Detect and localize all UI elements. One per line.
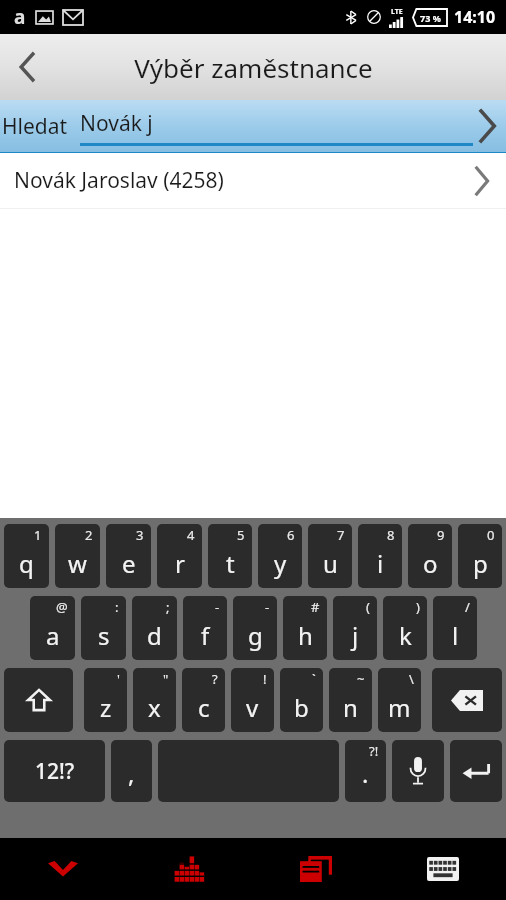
button[interactable]: Backspace xyxy=(432,668,502,732)
staticText: 9 xyxy=(437,526,445,544)
staticText: a xyxy=(46,619,60,652)
staticText: " xyxy=(163,670,169,688)
staticText: p xyxy=(473,547,488,580)
button[interactable]: Enter xyxy=(450,740,502,802)
staticText: ; xyxy=(166,598,170,616)
staticText: i xyxy=(377,547,384,580)
button[interactable]: 9 xyxy=(408,524,452,588)
staticText: m xyxy=(388,691,411,724)
staticText: 3 xyxy=(136,526,144,544)
staticText: a xyxy=(14,4,26,30)
button[interactable]: Hledat xyxy=(0,100,506,152)
button[interactable]: - xyxy=(183,596,227,660)
button[interactable]: \ xyxy=(378,668,421,732)
button[interactable]: 0 xyxy=(458,524,502,588)
button[interactable]: 2 xyxy=(55,524,100,588)
staticText: 8 xyxy=(387,526,395,544)
button[interactable]: # xyxy=(283,596,327,660)
staticText: r xyxy=(175,547,185,580)
staticText: 2 xyxy=(85,526,93,544)
button[interactable]: 3 xyxy=(106,524,151,588)
button[interactable]: Symbols xyxy=(4,740,105,802)
button[interactable]: " xyxy=(133,668,176,732)
staticText: - xyxy=(265,598,270,616)
staticText: 12!? xyxy=(35,757,75,786)
button[interactable]: Back xyxy=(0,838,126,900)
staticText: @ xyxy=(56,598,68,616)
button[interactable]: 1 xyxy=(4,524,49,588)
button[interactable]: : xyxy=(81,596,126,660)
button[interactable]: 8 xyxy=(358,524,402,588)
staticText: j xyxy=(352,619,359,652)
staticText: 0 xyxy=(487,526,495,544)
staticText: v xyxy=(246,691,259,724)
button[interactable]: ! xyxy=(231,668,274,732)
button[interactable]: 5 xyxy=(208,524,252,588)
staticText: q xyxy=(19,547,34,580)
staticText: 4 xyxy=(187,526,195,544)
button[interactable]: Voice input xyxy=(392,740,444,802)
staticText: LTE xyxy=(391,7,403,17)
staticText: l xyxy=(452,619,459,652)
staticText: z xyxy=(100,691,112,724)
staticText: t xyxy=(226,547,235,580)
staticText: ! xyxy=(263,670,267,688)
staticText: e xyxy=(122,547,136,580)
button[interactable]: 6 xyxy=(258,524,302,588)
button[interactable]: , xyxy=(111,740,152,802)
staticText: k xyxy=(399,619,412,652)
staticText: 14:10 xyxy=(454,6,496,28)
staticText: Hledat xyxy=(2,112,68,141)
staticText: g xyxy=(248,619,263,652)
staticText: : xyxy=(115,598,119,616)
staticText: ( xyxy=(366,598,370,616)
staticText: 1 xyxy=(34,526,42,544)
staticText: ' xyxy=(117,670,120,688)
button[interactable]: ~ xyxy=(329,668,372,732)
button[interactable]: Novák Jaroslav (4258) xyxy=(0,153,506,208)
staticText: d xyxy=(147,619,162,652)
staticText: b xyxy=(294,691,309,724)
button[interactable]: / xyxy=(433,596,477,660)
staticText: f xyxy=(201,619,210,652)
staticText: Výběr zaměstnance xyxy=(134,50,373,85)
staticText: # xyxy=(311,598,320,616)
staticText: w xyxy=(68,547,87,580)
staticText: \ xyxy=(409,670,414,688)
button[interactable]: ?! xyxy=(345,740,386,802)
staticText: c xyxy=(198,691,210,724)
staticText: o xyxy=(423,547,438,580)
staticText: s xyxy=(98,619,110,652)
button[interactable]: ( xyxy=(333,596,377,660)
button[interactable]: Shift xyxy=(4,668,73,732)
button[interactable]: @ xyxy=(30,596,75,660)
button[interactable]: Home xyxy=(126,838,252,900)
button[interactable]: ; xyxy=(132,596,177,660)
staticText: 73 % xyxy=(420,12,441,24)
button[interactable]: - xyxy=(233,596,277,660)
staticText: 5 xyxy=(237,526,245,544)
button[interactable]: ? xyxy=(182,668,225,732)
staticText: ~ xyxy=(357,670,365,688)
staticText: ?! xyxy=(369,742,379,760)
staticText: 7 xyxy=(337,526,345,544)
staticText: , xyxy=(128,757,135,790)
button[interactable]: 4 xyxy=(157,524,202,588)
button[interactable]: 7 xyxy=(308,524,352,588)
staticText: ` xyxy=(312,670,316,688)
button[interactable]: Back xyxy=(0,40,54,94)
button[interactable]: ) xyxy=(383,596,427,660)
button[interactable]: ` xyxy=(280,668,323,732)
staticText: u xyxy=(323,547,338,580)
staticText: x xyxy=(148,691,161,724)
staticText: . xyxy=(362,757,369,790)
button[interactable]: Switch keyboard xyxy=(379,838,506,900)
staticText: h xyxy=(298,619,313,652)
button[interactable]: Recent apps xyxy=(252,838,379,900)
staticText: ? xyxy=(212,670,218,688)
button[interactable]: ' xyxy=(84,668,127,732)
staticText: y xyxy=(274,547,287,580)
staticText: Novák Jaroslav (4258) xyxy=(14,166,224,195)
staticText: Novák j xyxy=(80,109,153,138)
